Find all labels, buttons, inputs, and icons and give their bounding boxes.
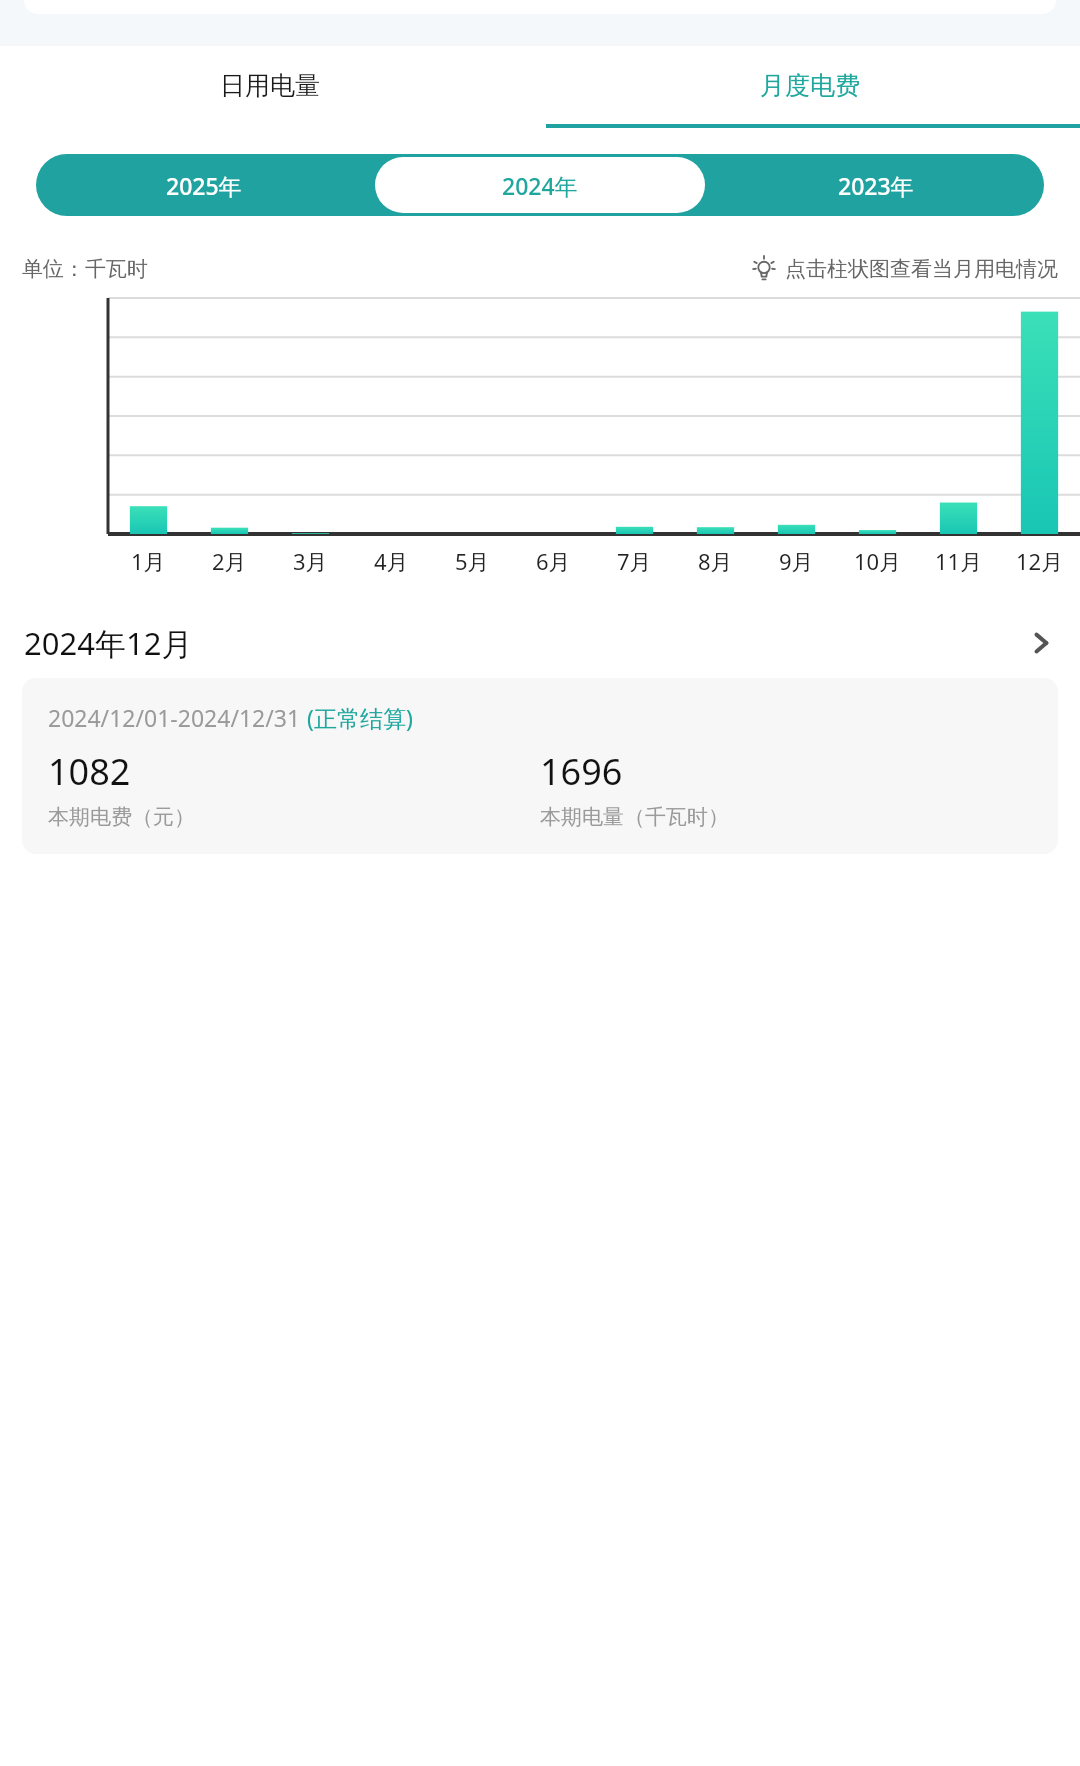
button[interactable]: 2023年 — [711, 157, 1041, 213]
staticText: 1696 — [540, 747, 623, 796]
staticText: 8月 — [698, 546, 733, 576]
button[interactable]: 2024年12月 — [24, 622, 1056, 664]
button[interactable]: 2025年 — [39, 157, 369, 213]
button[interactable]: 2024年 — [375, 157, 705, 213]
staticText: 10月 — [854, 546, 902, 576]
button[interactable]: 月度电费 — [540, 46, 1080, 124]
staticText: 5月 — [455, 546, 490, 576]
staticText: 2月 — [212, 546, 247, 576]
button[interactable]: 日用电量 — [0, 46, 540, 124]
staticText: 2024/12/01-2024/12/31 — [48, 702, 307, 733]
staticText: 1月 — [131, 546, 166, 576]
other: 提示 — [751, 256, 777, 282]
staticText: 11月 — [935, 546, 983, 576]
staticText: 2023年 — [838, 170, 914, 201]
staticText: 2025年 — [166, 170, 242, 201]
staticText: 2024年 — [502, 170, 578, 201]
staticText: 本期电量（千瓦时） — [540, 804, 729, 830]
button[interactable]: 2024/12/01-2024/12/31 — [22, 678, 1058, 854]
staticText: 日用电量 — [220, 70, 320, 101]
button[interactable] — [108, 298, 1080, 534]
other: 查看详情 — [1026, 628, 1056, 658]
staticText: 7月 — [617, 546, 652, 576]
staticText: 单位：千瓦时 — [22, 256, 148, 282]
staticText: 月度电费 — [760, 70, 860, 101]
staticText: 3月 — [293, 546, 328, 576]
staticText: 9月 — [779, 546, 814, 576]
staticText: 6月 — [536, 546, 571, 576]
staticText: 点击柱状图查看当月用电情况 — [785, 256, 1058, 282]
staticText: 1082 — [48, 747, 131, 796]
staticText: 本期电费（元） — [48, 804, 195, 830]
staticText: (正常结算) — [307, 702, 413, 733]
staticText: 4月 — [374, 546, 409, 576]
button[interactable]: 提示 — [751, 256, 1058, 282]
staticText: 12月 — [1016, 546, 1064, 576]
staticText: 2024年12月 — [24, 622, 193, 664]
